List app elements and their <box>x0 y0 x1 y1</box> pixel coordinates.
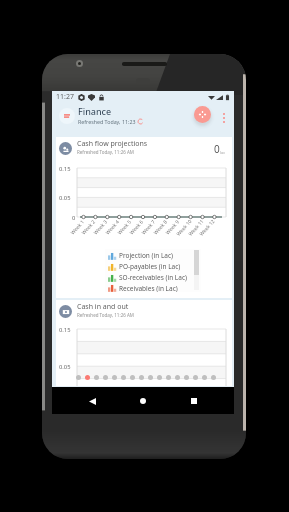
staticText: Week 10 <box>175 218 194 238</box>
button[interactable] <box>175 375 180 380</box>
staticText: Week 4 <box>104 218 122 236</box>
button[interactable] <box>112 375 117 380</box>
staticText: 0.15 <box>59 326 71 334</box>
staticText: Week 6 <box>128 218 146 236</box>
staticText: lac <box>220 150 226 155</box>
staticText: 0.05 <box>59 363 71 371</box>
button[interactable] <box>121 375 126 380</box>
staticText: Receivables (in Lac) <box>119 284 178 292</box>
button[interactable] <box>157 375 162 380</box>
staticText: Refreshed Today, 11:26 AM <box>77 312 134 318</box>
button[interactable] <box>76 375 81 380</box>
button[interactable]: Cash in and out <box>56 300 232 386</box>
button[interactable] <box>211 375 216 380</box>
staticText: Cash in and out <box>77 302 129 312</box>
button[interactable] <box>139 375 144 380</box>
staticText: Week 7 <box>140 218 158 236</box>
staticText: 0.05 <box>59 194 71 202</box>
button[interactable] <box>184 375 189 380</box>
button[interactable] <box>148 375 153 380</box>
staticText: Refreshed Today, 11:26 AM <box>77 149 134 155</box>
staticText: Week 11 <box>187 218 206 238</box>
staticText: PO-payables (in Lac) <box>119 262 181 271</box>
button[interactable] <box>130 375 135 380</box>
staticText: Week 9 <box>164 218 182 236</box>
staticText: Refreshed Today, 11:23 <box>78 118 136 125</box>
button[interactable] <box>193 375 198 380</box>
staticText: Week 5 <box>116 218 134 236</box>
staticText: 0 <box>214 142 220 156</box>
staticText: Week 2 <box>80 218 98 236</box>
staticText: 0 <box>72 214 76 222</box>
button[interactable]: Back <box>81 390 103 412</box>
staticText: Cash flow projections <box>77 139 148 149</box>
button[interactable] <box>202 375 207 380</box>
staticText: SO-receivables (in Lac) <box>119 273 187 282</box>
staticText: Week 8 <box>152 218 170 236</box>
button[interactable]: Recents <box>183 390 205 412</box>
staticText: Projection (in Lac) <box>119 251 174 260</box>
button[interactable] <box>166 375 171 380</box>
staticText: Week 1 <box>69 218 87 236</box>
staticText: Finance <box>78 105 112 117</box>
button[interactable]: Home <box>132 390 154 412</box>
staticText: Week 3 <box>92 218 110 236</box>
button[interactable]: More options <box>218 108 230 127</box>
button[interactable]: Add <box>194 106 211 123</box>
staticText: 0.15 <box>59 165 71 173</box>
button[interactable] <box>103 375 108 380</box>
button[interactable]: Cash flow projections <box>56 137 232 298</box>
button[interactable] <box>85 375 90 380</box>
staticText: 11:27 <box>56 92 74 102</box>
button[interactable]: Menu <box>59 108 75 124</box>
staticText: Week 12 <box>198 218 217 238</box>
button[interactable] <box>94 375 99 380</box>
